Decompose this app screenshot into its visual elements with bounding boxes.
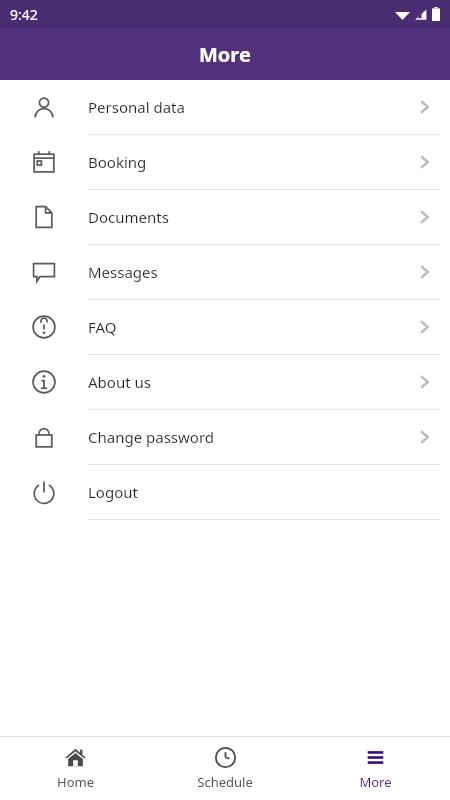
button[interactable]: Booking — [0, 135, 450, 190]
staticText: Messages — [88, 262, 412, 282]
staticText: More — [199, 41, 251, 68]
button[interactable]: More — [300, 737, 450, 800]
button[interactable]: Change password — [0, 410, 450, 465]
button[interactable]: Messages — [0, 245, 450, 300]
staticText: Logout — [88, 482, 450, 502]
button[interactable]: Documents — [0, 190, 450, 245]
button[interactable]: Schedule — [150, 737, 300, 800]
button[interactable]: Personal data — [0, 80, 450, 135]
staticText: FAQ — [88, 317, 412, 337]
staticText: Personal data — [88, 97, 412, 117]
staticText: Schedule — [197, 773, 253, 791]
button[interactable]: About us — [0, 355, 450, 410]
staticText: About us — [88, 372, 412, 392]
button[interactable]: Home — [0, 737, 150, 800]
button[interactable]: FAQ — [0, 300, 450, 355]
staticText: Booking — [88, 152, 412, 172]
staticText: More — [359, 773, 392, 791]
staticText: Change password — [88, 427, 412, 447]
staticText: Home — [57, 773, 94, 791]
staticText: Documents — [88, 207, 412, 227]
staticText: 9:42 — [10, 5, 38, 24]
button[interactable]: Logout — [0, 465, 450, 520]
